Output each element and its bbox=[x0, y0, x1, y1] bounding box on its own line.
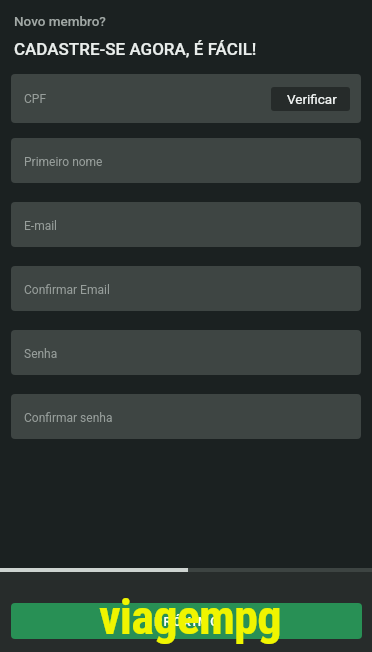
staticText: Confirmar Email bbox=[24, 283, 110, 297]
staticText: viagempg bbox=[99, 589, 281, 646]
button[interactable]: Primeiro nome bbox=[11, 138, 361, 183]
staticText: Senha bbox=[24, 347, 58, 361]
staticText: Primeiro nome bbox=[24, 155, 103, 169]
button[interactable]: Confirmar Email bbox=[11, 266, 361, 311]
button[interactable]: Confirmar senha bbox=[11, 394, 361, 439]
button[interactable]: E-mail bbox=[11, 202, 361, 247]
staticText: E-mail bbox=[24, 219, 58, 233]
button[interactable]: PRÓXIMO bbox=[11, 603, 362, 639]
staticText: Novo membro? bbox=[14, 13, 106, 29]
button[interactable]: CPF bbox=[11, 74, 361, 123]
staticText: CPF bbox=[24, 92, 47, 106]
staticText: PRÓXIMO bbox=[154, 614, 221, 629]
staticText: Verificar bbox=[287, 91, 337, 107]
staticText: CADASTRE-SE AGORA, É FÁCIL! bbox=[14, 39, 257, 59]
staticText: Confirmar senha bbox=[24, 411, 113, 425]
button[interactable]: Senha bbox=[11, 330, 361, 375]
button[interactable]: Verificar bbox=[271, 87, 350, 111]
